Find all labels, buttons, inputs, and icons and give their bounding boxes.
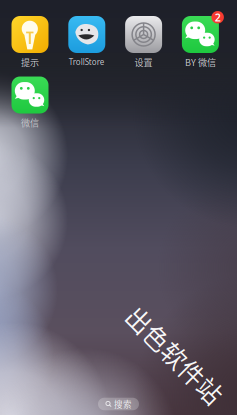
staticText: TrollStore <box>69 57 105 67</box>
button[interactable]: 微信 <box>2 76 58 127</box>
button[interactable]: 搜索 <box>98 398 139 410</box>
button[interactable]: 提示 <box>2 16 58 67</box>
staticText: 设置 <box>135 55 153 68</box>
staticText: 提示 <box>21 55 39 68</box>
staticText: 微信 <box>21 116 39 129</box>
staticText: BY 微信 <box>185 55 216 68</box>
button[interactable]: 设置 <box>115 16 172 67</box>
button[interactable]: TrollStore <box>58 16 115 67</box>
staticText: 搜索 <box>114 398 132 410</box>
button[interactable]: 2 <box>172 16 229 67</box>
staticText: 2 <box>215 10 221 24</box>
staticText: 出色软件站 <box>112 337 237 373</box>
